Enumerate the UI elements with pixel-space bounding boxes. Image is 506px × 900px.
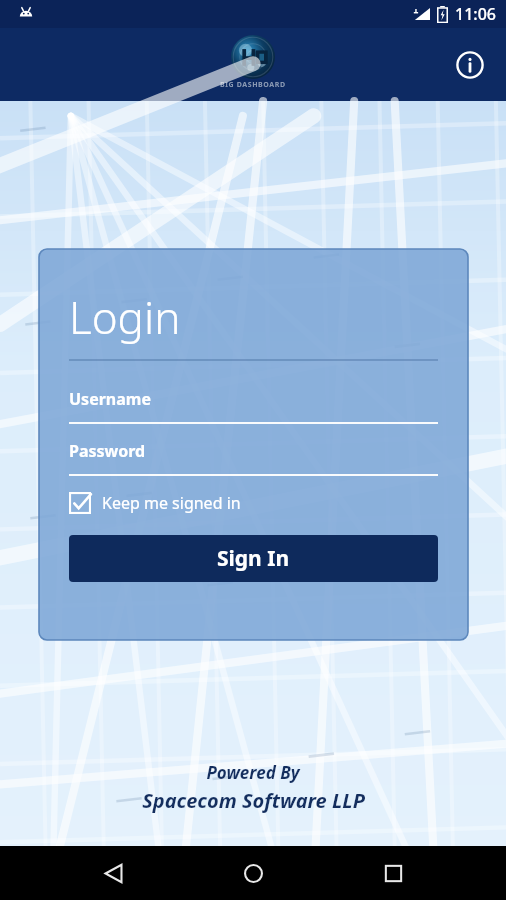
staticText: BIG DASHBOARD [220, 80, 286, 90]
staticText: Spacecom Software LLP [142, 787, 365, 814]
button[interactable]: Keep me signed in [69, 492, 241, 514]
staticText: Sign In [217, 544, 290, 573]
button[interactable]: Home [226, 846, 280, 900]
button[interactable]: Back [86, 846, 140, 900]
staticText: 11:06 [455, 3, 496, 25]
staticText: Password [69, 440, 146, 462]
staticText: Login [69, 287, 181, 347]
staticText: Powered By [206, 761, 300, 784]
staticText: Username [69, 388, 151, 410]
button[interactable]: Recent apps [366, 846, 420, 900]
staticText: Keep me signed in [102, 492, 241, 514]
button[interactable]: Sign In [69, 535, 438, 582]
button[interactable]: Information [450, 45, 490, 85]
